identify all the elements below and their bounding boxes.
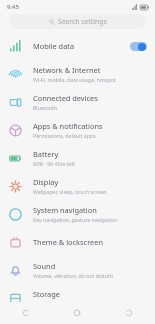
staticText: Display: [33, 177, 59, 187]
staticText: Battery: [33, 149, 59, 159]
button[interactable]: Mobile data toggle: [130, 42, 147, 51]
button[interactable]: Back: [0, 302, 51, 324]
button[interactable]: Storage: [0, 284, 155, 312]
staticText: Theme & lockscreen: [33, 237, 103, 247]
staticText: Search settings: [58, 17, 107, 26]
staticText: Network & Internet: [33, 65, 101, 75]
staticText: Connected devices: [33, 93, 98, 103]
button[interactable]: Connected devices: [0, 88, 155, 116]
button[interactable]: Search settings: [9, 14, 146, 29]
staticText: Mobile data: [33, 41, 75, 51]
button[interactable]: Display: [0, 172, 155, 200]
staticText: Volume, vibration, do not disturb: [33, 272, 114, 279]
button[interactable]: Theme & lockscreen: [0, 228, 155, 256]
staticText: System navigation: [33, 205, 97, 215]
staticText: Storage: [33, 289, 60, 299]
staticText: Bluetooth: [33, 104, 58, 111]
staticText: Wallpaper, sleep, touch screen: [33, 188, 107, 195]
button[interactable]: Battery: [0, 144, 155, 172]
staticText: Wi-Fi, mobile, data usage, hotspot: [33, 76, 116, 83]
button[interactable]: Mobile data: [0, 32, 155, 60]
button[interactable]: Home: [51, 302, 103, 324]
staticText: 9:45: [7, 3, 19, 11]
button[interactable]: Sound: [0, 256, 155, 284]
button[interactable]: System navigation: [0, 200, 155, 228]
staticText: Permissions, default apps: [33, 132, 96, 139]
staticText: Sound: [33, 261, 56, 271]
staticText: 60% · 9h 40m left: [33, 160, 75, 167]
button[interactable]: Apps & notifications: [0, 116, 155, 144]
staticText: Apps & notifications: [33, 121, 103, 131]
staticText: Key navigation, gesture navigation: [33, 216, 118, 223]
button[interactable]: Network & Internet: [0, 60, 155, 88]
button[interactable]: Recents: [103, 302, 155, 324]
